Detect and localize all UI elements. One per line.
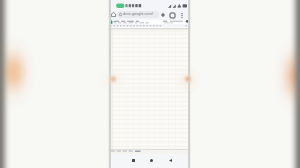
button[interactable]: Recents <box>128 155 138 165</box>
button[interactable]: New tab <box>159 11 167 19</box>
staticText: docs.google.com/spre <box>123 11 159 18</box>
button[interactable]: Tabs <box>168 11 176 19</box>
button[interactable]: Home <box>110 11 117 18</box>
button[interactable]: docs.google.com/spre <box>117 11 159 18</box>
button[interactable]: Spreadsheet header <box>108 20 191 29</box>
button[interactable]: Back <box>165 155 175 165</box>
button[interactable]: Home <box>146 155 156 165</box>
button[interactable]: More options <box>178 11 186 19</box>
